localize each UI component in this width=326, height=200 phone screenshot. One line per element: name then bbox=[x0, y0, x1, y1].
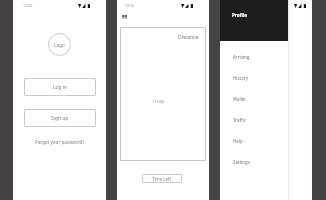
button[interactable]: Sign up bbox=[24, 109, 96, 127]
staticText: 12:30 bbox=[125, 3, 135, 8]
button[interactable]: Forgot your password? bbox=[35, 139, 85, 145]
staticText: Arriving bbox=[233, 54, 250, 60]
button[interactable]: Settings bbox=[220, 151, 288, 172]
button[interactable]: Log in bbox=[24, 78, 96, 96]
staticText: Profile bbox=[232, 12, 247, 18]
staticText: map bbox=[153, 97, 165, 104]
staticText: Wallet bbox=[233, 96, 246, 102]
staticText: Logo bbox=[54, 42, 65, 48]
staticText: 12:30 bbox=[23, 3, 33, 8]
button[interactable]: Traffic bbox=[220, 109, 288, 130]
button[interactable]: Time Left bbox=[142, 174, 182, 183]
button[interactable]: Help bbox=[220, 130, 288, 151]
staticText: Settings bbox=[233, 159, 250, 165]
staticText: Sign up bbox=[51, 115, 69, 122]
staticText: Time Left bbox=[152, 176, 172, 182]
staticText: Forgot your password? bbox=[35, 139, 85, 145]
button[interactable]: Arriving bbox=[220, 46, 288, 67]
staticText: History bbox=[233, 75, 248, 81]
button[interactable]: Menu bbox=[122, 15, 127, 19]
button[interactable]: Wallet bbox=[220, 88, 288, 109]
staticText: Traffic bbox=[233, 117, 246, 123]
staticText: Distance bbox=[178, 34, 199, 41]
button[interactable]: History bbox=[220, 67, 288, 88]
staticText: Help bbox=[233, 138, 243, 144]
staticText: Log in bbox=[53, 84, 68, 91]
